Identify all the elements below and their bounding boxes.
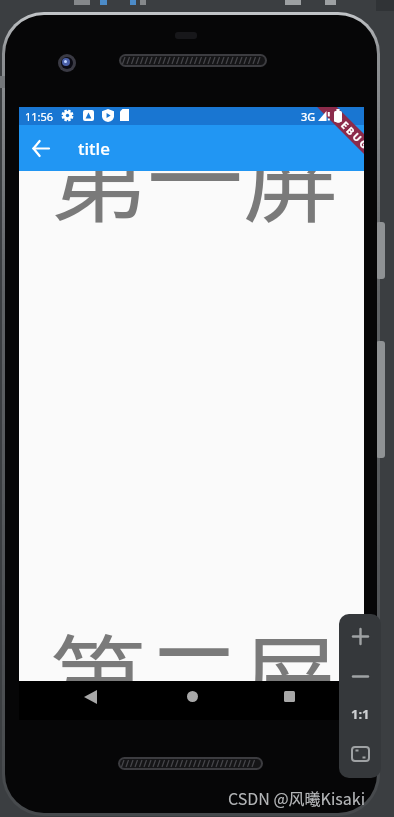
button[interactable] xyxy=(26,134,54,162)
button[interactable]: 1:1 xyxy=(339,698,381,730)
button[interactable] xyxy=(339,660,381,692)
staticText: title xyxy=(78,137,110,160)
button[interactable] xyxy=(79,681,101,712)
staticText: 3G xyxy=(301,109,316,124)
staticText: 1:1 xyxy=(351,705,370,723)
button[interactable] xyxy=(278,681,300,712)
staticText: CSDN @风曦Kisaki xyxy=(228,786,366,809)
staticText: 第一屏 xyxy=(51,171,339,242)
button[interactable] xyxy=(339,620,381,652)
staticText: 第二屏 xyxy=(50,604,338,681)
button[interactable] xyxy=(339,738,381,770)
button[interactable] xyxy=(181,681,203,712)
staticText: DEBUG xyxy=(331,111,364,153)
staticText: 11:56 xyxy=(25,109,54,124)
